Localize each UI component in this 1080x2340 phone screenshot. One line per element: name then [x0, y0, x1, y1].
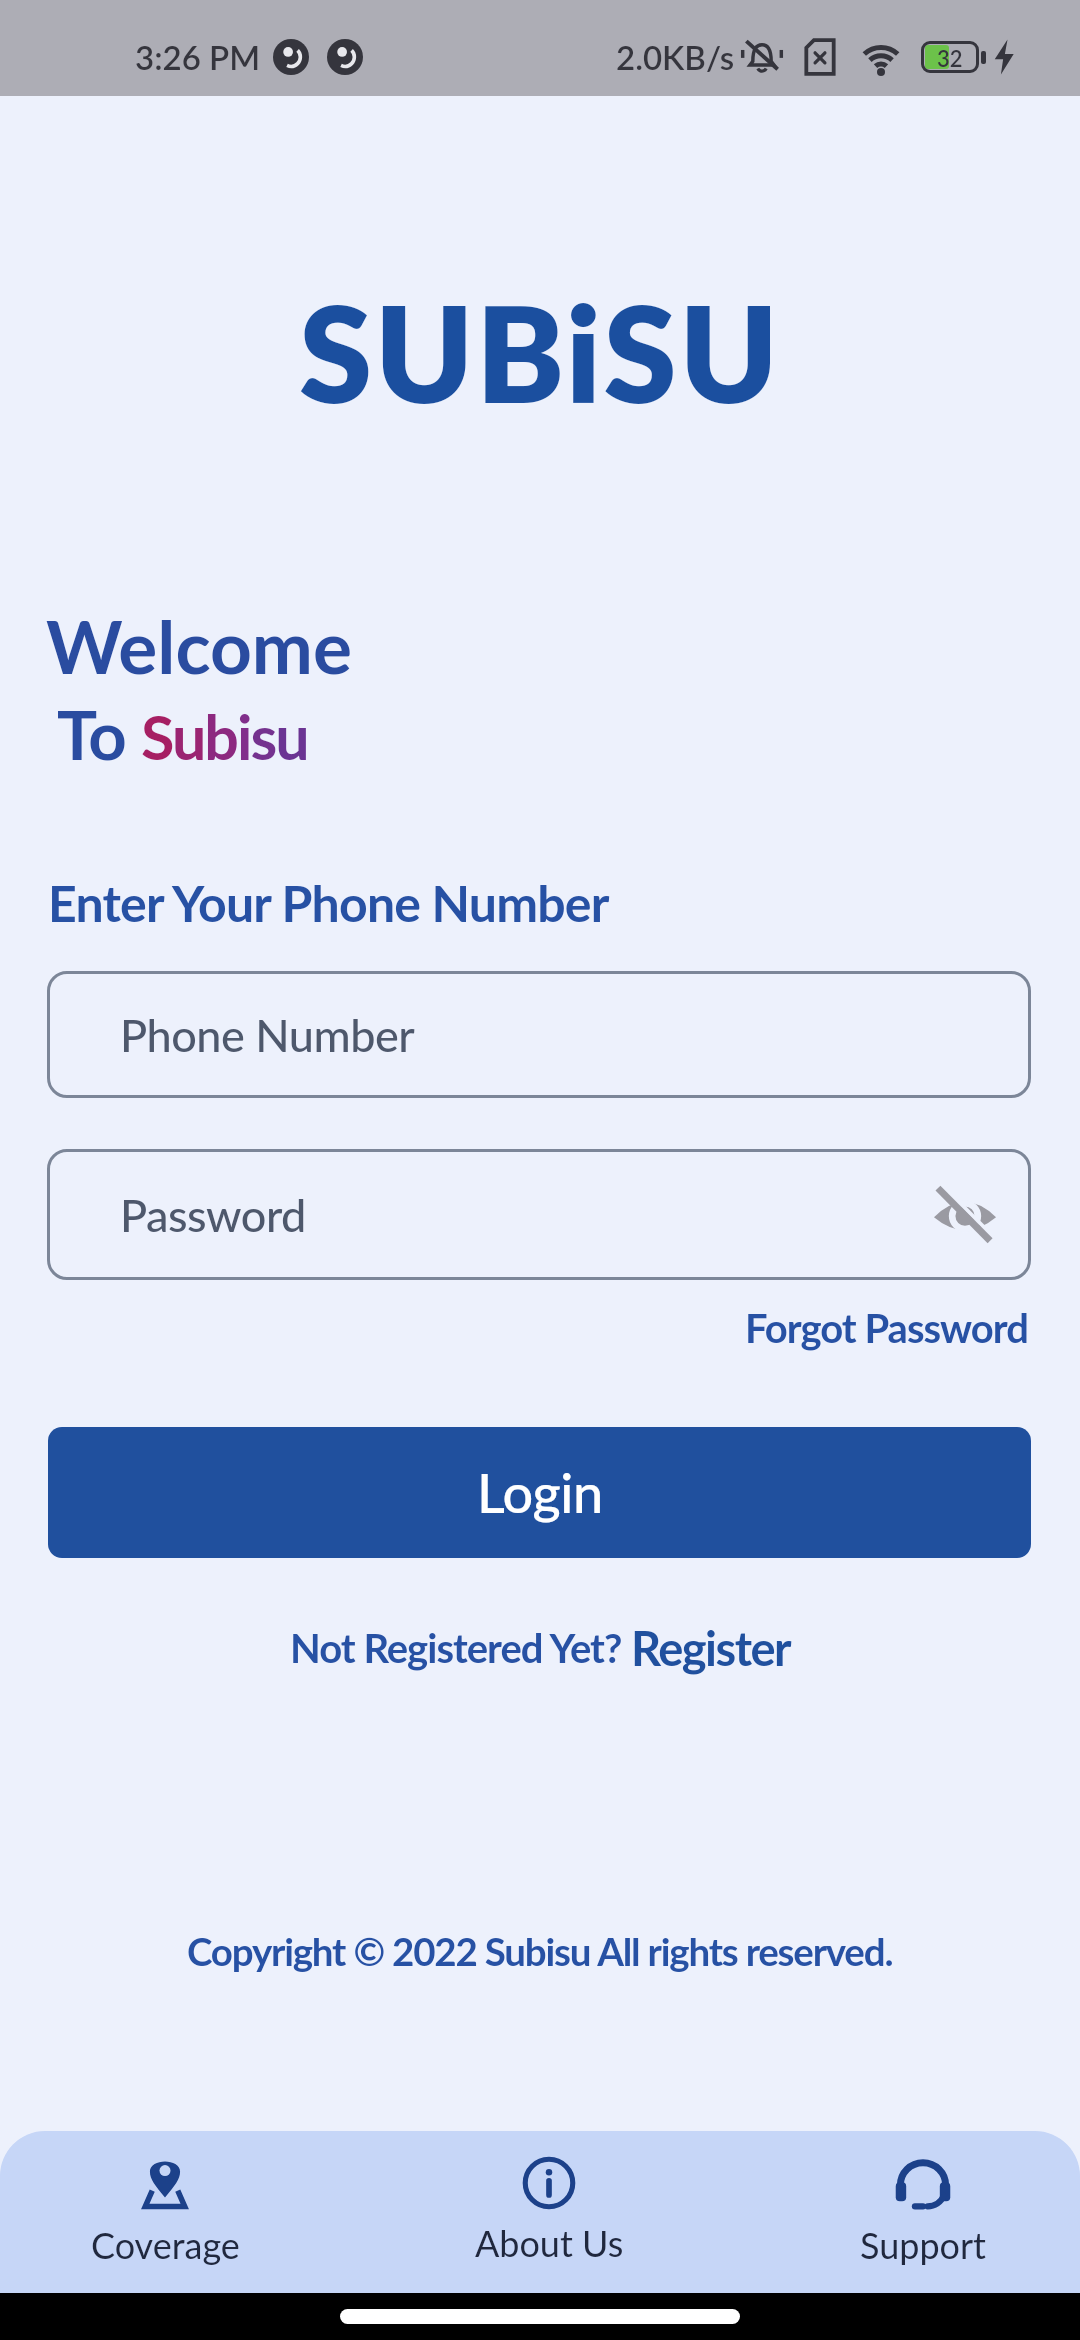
staticText: 32 [937, 45, 963, 69]
staticText: 3:26 PM [135, 37, 261, 77]
staticText: Password [120, 1188, 306, 1242]
staticText: SUBiSU [299, 273, 781, 431]
staticText: 2.0KB/s [616, 37, 735, 77]
staticText: Support [860, 2223, 987, 2266]
button[interactable]: Password [47, 1149, 1031, 1280]
staticText: Subisu [141, 700, 308, 773]
staticText: Welcome [46, 602, 352, 690]
button[interactable]: Support [793, 2131, 1053, 2293]
button[interactable]: Not Registered Yet? [290, 1620, 791, 1676]
staticText: Copyright © 2022 Subisu All rights reser… [187, 1928, 893, 1974]
button[interactable]: About Us [419, 2131, 679, 2293]
staticText: To [57, 694, 141, 774]
staticText: Register [631, 1620, 791, 1676]
button[interactable]: Forgot Password [745, 1304, 1028, 1352]
staticText: Not Registered Yet? [290, 1624, 631, 1672]
button[interactable]: Login [48, 1427, 1031, 1558]
button[interactable]: Phone Number [47, 971, 1031, 1098]
staticText: Coverage [91, 2223, 240, 2266]
staticText: Enter Your Phone Number [48, 873, 609, 933]
staticText: Phone Number [120, 1008, 415, 1062]
staticText: About Us [475, 2221, 624, 2264]
staticText: Login [477, 1460, 603, 1525]
button[interactable]: Coverage [35, 2131, 295, 2293]
